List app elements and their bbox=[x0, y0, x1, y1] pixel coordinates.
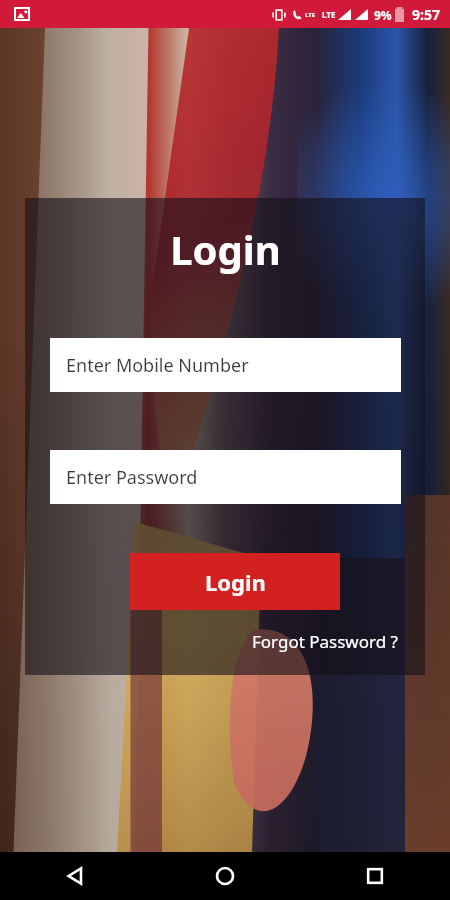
button[interactable]: Login bbox=[130, 553, 340, 610]
staticText: Forgot Password ? bbox=[252, 630, 398, 653]
staticText: Login bbox=[170, 222, 281, 276]
staticText: LTE bbox=[322, 9, 336, 20]
button[interactable]: Enter Password bbox=[50, 450, 401, 504]
staticText: Enter Password bbox=[66, 465, 198, 490]
staticText: 9:57 bbox=[412, 5, 440, 24]
button[interactable]: Enter Mobile Number bbox=[50, 338, 401, 392]
button[interactable]: Home bbox=[150, 852, 300, 900]
staticText: Enter Mobile Number bbox=[66, 353, 249, 378]
button[interactable]: Recent apps bbox=[300, 852, 450, 900]
staticText: Login bbox=[205, 567, 266, 597]
staticText: 9% bbox=[374, 7, 392, 23]
button[interactable]: Forgot Password ? bbox=[250, 626, 400, 657]
staticText: LTE bbox=[305, 11, 316, 19]
button[interactable]: Back bbox=[0, 852, 150, 900]
